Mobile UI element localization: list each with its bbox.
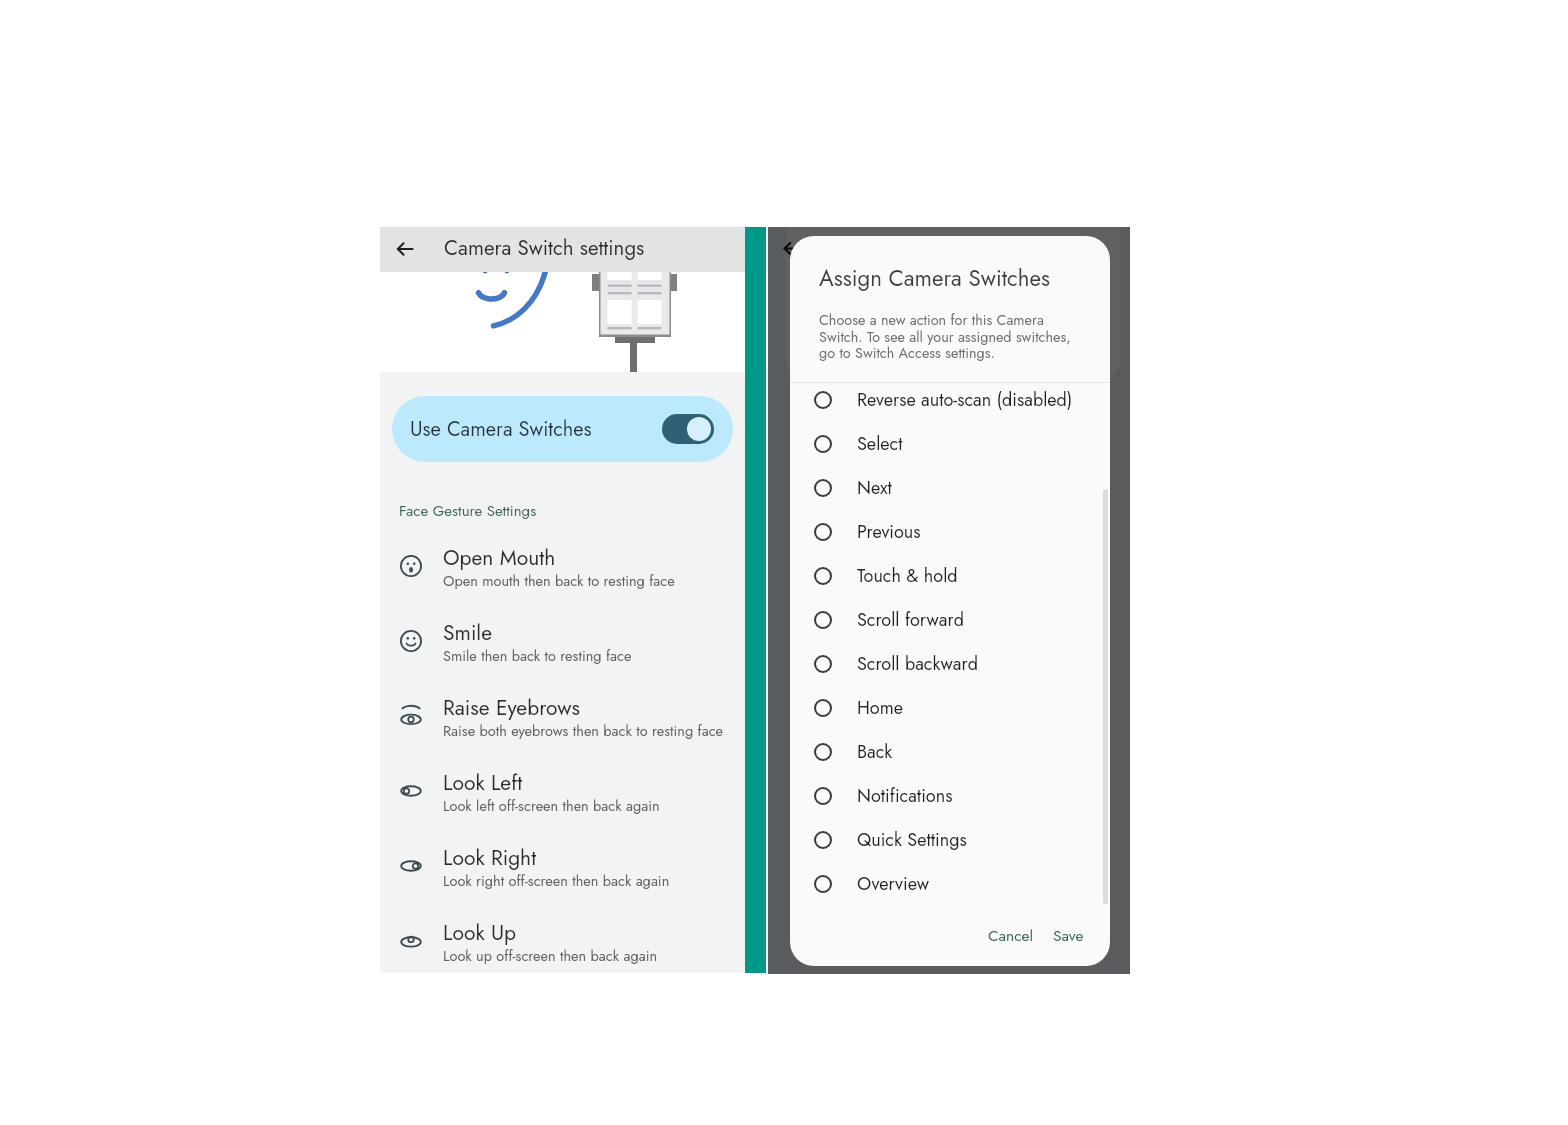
button[interactable]: Look Left [380, 754, 745, 829]
button[interactable]: Look Right [380, 829, 745, 904]
staticText: Notifications [857, 783, 953, 809]
staticText: Select [857, 431, 903, 457]
button[interactable]: Scroll forward [790, 598, 1110, 642]
button[interactable]: Quick Settings [790, 818, 1110, 862]
staticText: Touch & hold [857, 563, 958, 589]
staticText: Raise both eyebrows then back to resting… [443, 720, 724, 741]
button[interactable]: Select [790, 422, 1110, 466]
staticText: Look left off-screen then back again [443, 795, 660, 816]
button[interactable]: Save [1045, 918, 1092, 952]
staticText: Look Up [443, 918, 517, 948]
button[interactable]: Look Up [380, 904, 745, 973]
staticText: Reverse auto-scan (disabled) [857, 387, 1073, 413]
button[interactable]: Use Camera Switches [392, 396, 733, 462]
button[interactable]: Scroll backward [790, 642, 1110, 686]
staticText: Choose a new action for this Camera Swit… [819, 310, 1081, 363]
staticText: Smile then back to resting face [443, 645, 632, 666]
staticText: Open mouth then back to resting face [443, 570, 675, 591]
button[interactable]: Cancel [980, 918, 1042, 952]
button[interactable]: Next [790, 466, 1110, 510]
staticText: Raise Eyebrows [443, 693, 580, 723]
staticText: Home [857, 695, 904, 721]
staticText: Open Mouth [443, 543, 556, 573]
staticText: Next [857, 475, 892, 501]
staticText: Cancel [988, 924, 1034, 946]
button[interactable]: Previous [790, 510, 1110, 554]
button[interactable]: Back [790, 730, 1110, 774]
staticText: Smile [443, 618, 492, 648]
staticText: Quick Settings [857, 827, 967, 853]
button[interactable]: Open Mouth [380, 529, 745, 604]
button[interactable]: Reverse auto-scan (disabled) [790, 378, 1110, 422]
button[interactable]: Home [790, 686, 1110, 730]
button[interactable]: Smile [380, 604, 745, 679]
staticText: Save [1053, 924, 1084, 946]
staticText: Previous [857, 519, 921, 545]
staticText: Back [857, 739, 893, 765]
staticText: Scroll forward [857, 607, 964, 633]
button[interactable]: Raise Eyebrows [380, 679, 745, 754]
staticText: Overview [857, 871, 929, 897]
button[interactable]: Back [391, 235, 419, 263]
button[interactable]: Overview [790, 862, 1110, 906]
button[interactable]: Back [782, 239, 800, 257]
staticText: Look Left [443, 768, 523, 798]
staticText: Scroll backward [857, 651, 978, 677]
staticText: Face Gesture Settings [399, 500, 537, 522]
staticText: Look up off-screen then back again [443, 945, 658, 966]
staticText: Assign Camera Switches [819, 262, 1050, 294]
button[interactable]: Notifications [790, 774, 1110, 818]
staticText: Camera Switch settings [444, 233, 645, 263]
button[interactable]: Touch & hold [790, 554, 1110, 598]
staticText: Use Camera Switches [410, 415, 592, 444]
staticText: Look right off-screen then back again [443, 870, 670, 891]
staticText: Look Right [443, 843, 537, 873]
